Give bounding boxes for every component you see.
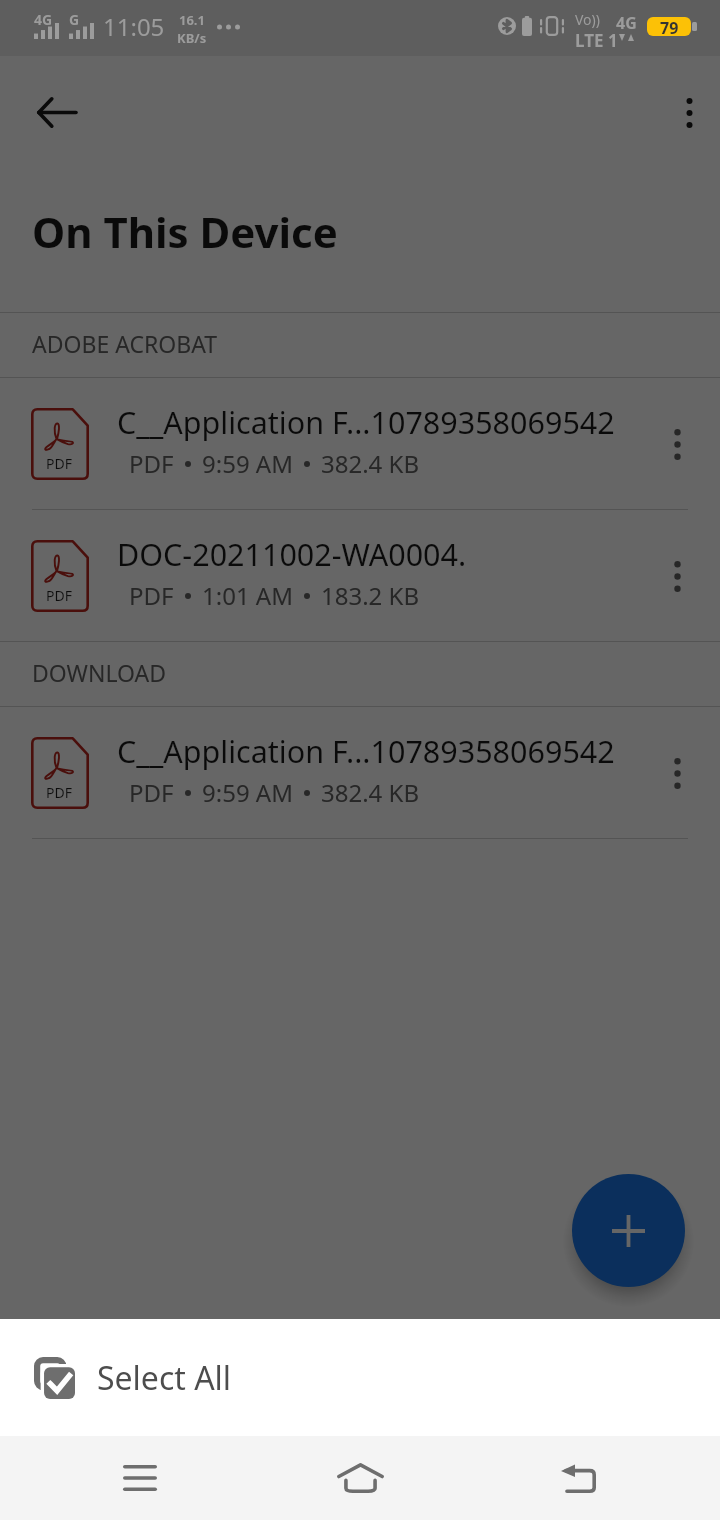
staticText: Vo)): [575, 10, 600, 29]
button[interactable]: More options: [661, 85, 717, 141]
staticText: 16.1: [179, 11, 205, 29]
staticText: ADOBE ACROBAT: [32, 328, 218, 359]
staticText: 9:59 AM: [202, 447, 293, 480]
staticText: 1:01 AM: [202, 579, 293, 612]
button[interactable]: PDF: [0, 707, 720, 838]
button[interactable]: Recents: [92, 1436, 188, 1520]
staticText: LTE 1: [575, 29, 618, 52]
staticText: 382.4 KB: [321, 447, 420, 480]
staticText: C__Application F...10789358069542: [117, 730, 615, 772]
staticText: PDF: [46, 586, 72, 605]
button[interactable]: More options: [640, 539, 714, 613]
staticText: C__Application F...10789358069542: [117, 401, 615, 443]
staticText: 9:59 AM: [202, 776, 293, 809]
button[interactable]: Select All: [0, 1319, 720, 1436]
button[interactable]: Back: [22, 84, 90, 140]
staticText: G: [69, 10, 80, 29]
button[interactable]: Home: [312, 1436, 408, 1520]
button[interactable]: More options: [640, 407, 714, 481]
button[interactable]: Back: [530, 1436, 626, 1520]
staticText: 4G: [616, 12, 637, 34]
staticText: 183.2 KB: [321, 579, 420, 612]
staticText: 11:05: [103, 10, 165, 43]
staticText: PDF: [129, 447, 174, 480]
staticText: PDF: [129, 579, 174, 612]
staticText: 4G: [34, 10, 53, 29]
button[interactable]: Add: [572, 1174, 685, 1287]
staticText: PDF: [129, 776, 174, 809]
button[interactable]: PDF: [0, 510, 720, 641]
staticText: 382.4 KB: [321, 776, 420, 809]
staticText: Select All: [97, 1356, 232, 1400]
staticText: PDF: [46, 454, 72, 473]
staticText: KB/s: [177, 29, 207, 47]
staticText: 79: [660, 17, 679, 36]
staticText: DOWNLOAD: [32, 657, 166, 688]
staticText: On This Device: [32, 203, 338, 260]
button[interactable]: PDF: [0, 378, 720, 509]
staticText: DOC-20211002-WA0004.: [117, 533, 467, 575]
staticText: PDF: [46, 783, 72, 802]
button[interactable]: More options: [640, 736, 714, 810]
